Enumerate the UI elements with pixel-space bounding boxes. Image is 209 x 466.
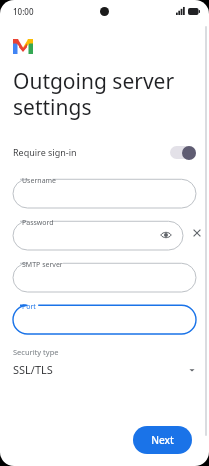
button[interactable]: Clear password (185, 216, 209, 250)
button[interactable]: Port (13, 300, 196, 334)
staticText: Username (22, 176, 57, 186)
staticText: Password (22, 218, 54, 228)
button[interactable]: Next (133, 426, 192, 454)
button[interactable]: Security type (0, 347, 209, 377)
staticText: Security type (13, 347, 59, 357)
staticText: Next (151, 433, 174, 447)
button[interactable]: Show password (159, 228, 173, 242)
button[interactable]: Require sign-in (0, 139, 209, 165)
button[interactable]: Require sign-in toggle (170, 145, 196, 160)
staticText: Require sign-in (13, 146, 77, 158)
staticText: Outgoing server settings (13, 67, 175, 122)
button[interactable]: Password (13, 216, 183, 250)
staticText: 10:00 (13, 6, 34, 17)
staticText: Port (22, 302, 36, 312)
button[interactable]: Username (13, 174, 196, 208)
staticText: SMTP server (22, 260, 63, 270)
staticText: SSL/TLS (13, 362, 53, 377)
button[interactable]: SMTP server (13, 258, 196, 292)
